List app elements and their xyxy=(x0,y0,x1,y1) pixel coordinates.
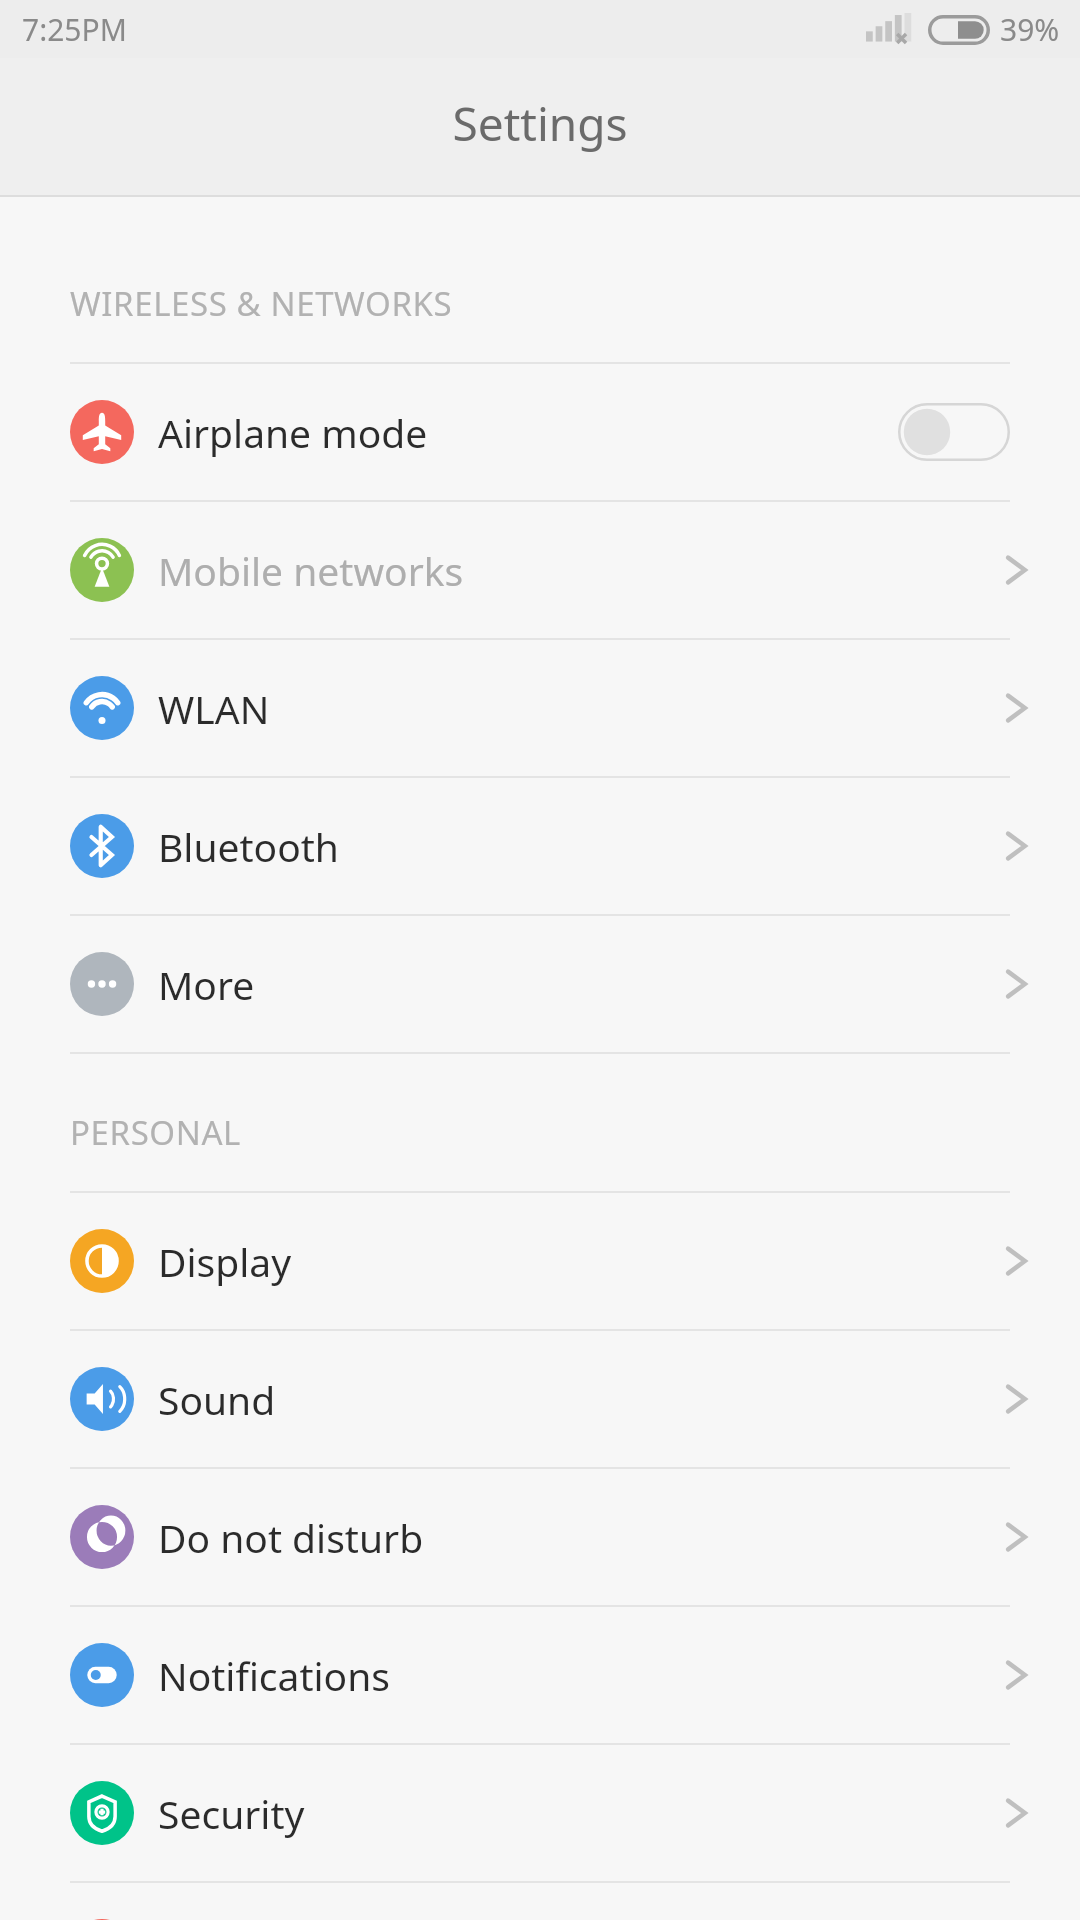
staticText: 7:25PM xyxy=(22,9,127,50)
button[interactable]: Display xyxy=(0,1193,1080,1329)
staticText: Airplane mode xyxy=(158,406,428,459)
staticText: WIRELESS & NETWORKS xyxy=(70,281,453,326)
button[interactable]: Security xyxy=(0,1745,1080,1881)
staticText: Display xyxy=(158,1235,292,1288)
button[interactable]: Bluetooth xyxy=(0,778,1080,914)
staticText: Do not disturb xyxy=(158,1511,424,1564)
staticText: Notifications xyxy=(158,1649,390,1702)
button[interactable]: Airplane mode xyxy=(0,364,1080,500)
staticText: Security xyxy=(158,1787,305,1840)
staticText: 39% xyxy=(1000,9,1060,50)
button[interactable]: Notifications xyxy=(0,1607,1080,1743)
staticText: Sound xyxy=(158,1373,276,1426)
button[interactable]: More xyxy=(0,916,1080,1052)
staticText: PERSONAL xyxy=(70,1110,241,1155)
staticText: Settings xyxy=(452,92,628,155)
staticText: Bluetooth xyxy=(158,820,339,873)
button[interactable]: Sound xyxy=(0,1331,1080,1467)
button[interactable]: Do not disturb xyxy=(0,1469,1080,1605)
button[interactable]: Mobile networks xyxy=(0,502,1080,638)
staticText: Mobile networks xyxy=(158,544,464,597)
staticText: WLAN xyxy=(158,682,270,735)
staticText: More xyxy=(158,958,255,1011)
button[interactable]: WLAN xyxy=(0,640,1080,776)
